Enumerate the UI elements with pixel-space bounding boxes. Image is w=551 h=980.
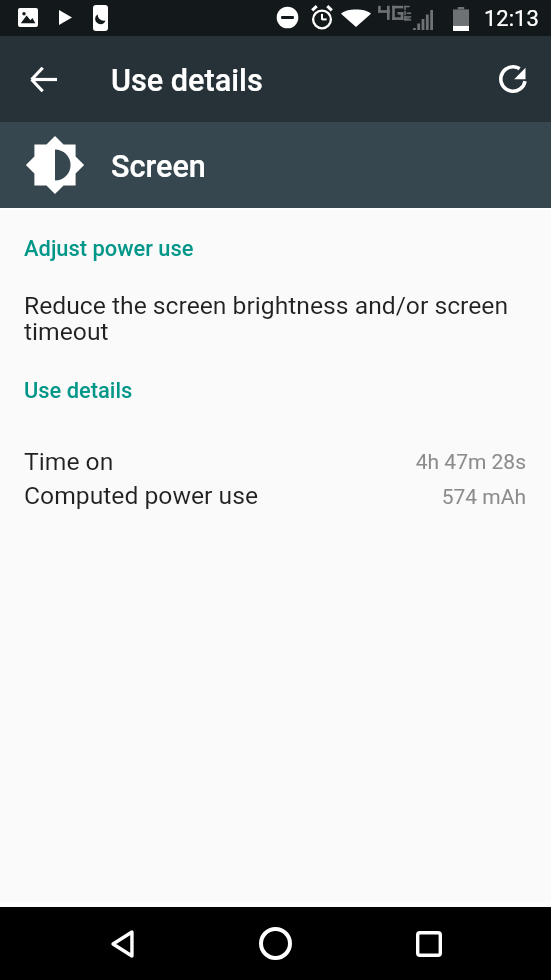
staticText: Screen (111, 149, 206, 185)
button[interactable]: Refresh (480, 46, 546, 112)
button[interactable]: Screen (0, 122, 551, 208)
button[interactable]: Home (239, 907, 312, 980)
button[interactable]: Back (86, 907, 159, 980)
staticText: Reduce the screen brightness and/or scre… (24, 291, 525, 346)
button[interactable]: Recent apps (392, 907, 465, 980)
staticText: Use details (111, 63, 263, 99)
staticText: 574 mAh (0, 485, 526, 510)
staticText: 12:13 (484, 6, 539, 32)
button[interactable]: Navigate up (10, 46, 76, 112)
staticText: Computed power use (24, 481, 259, 510)
staticText: Adjust power use (24, 236, 194, 262)
staticText: 4h 47m 28s (0, 450, 526, 475)
staticText: Time on (24, 447, 114, 476)
staticText: Use details (24, 378, 133, 404)
